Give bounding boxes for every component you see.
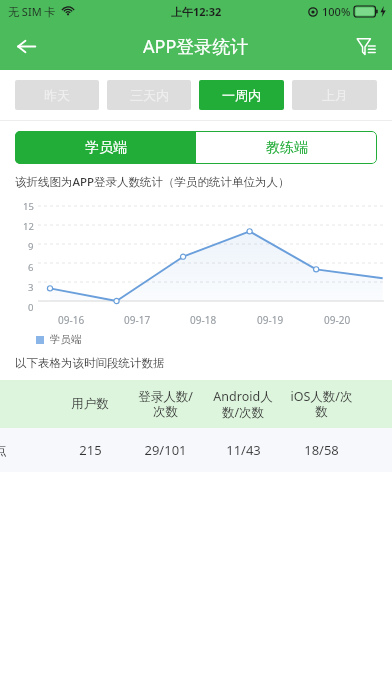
button[interactable]: 三天内 <box>107 80 191 110</box>
button[interactable]: 学员端 <box>15 131 196 164</box>
staticText: 点 <box>0 442 7 458</box>
button[interactable]: 一周内 <box>199 80 284 110</box>
staticText: 一周内 <box>222 87 261 103</box>
button[interactable]: Filter <box>346 26 386 66</box>
staticText: 用户数 <box>71 396 109 412</box>
staticText: 09-18 <box>190 313 217 327</box>
staticText: Android人 数/次数 <box>213 388 273 420</box>
staticText: 0 <box>28 301 34 313</box>
staticText: 100% <box>322 4 351 19</box>
staticText: 上午12:32 <box>171 4 222 19</box>
staticText: 15 <box>23 200 34 212</box>
staticText: 215 <box>79 441 102 459</box>
staticText: 该折线图为APP登录人数统计（学员的统计单位为人） <box>15 174 290 190</box>
staticText: 以下表格为该时间段统计数据 <box>15 356 165 370</box>
staticText: 09-16 <box>58 313 85 327</box>
staticText: 无 SIM 卡 <box>8 4 56 19</box>
staticText: 9 <box>28 240 34 252</box>
staticText: 09-17 <box>124 313 151 327</box>
staticText: 29/101 <box>144 441 187 459</box>
button[interactable]: 昨天 <box>15 80 99 110</box>
staticText: 09-19 <box>257 313 284 327</box>
button[interactable]: 教练端 <box>196 131 377 164</box>
staticText: 3 <box>28 281 34 293</box>
staticText: 学员端 <box>85 139 127 157</box>
staticText: 学员端 <box>50 333 82 346</box>
staticText: 上月 <box>322 87 348 103</box>
staticText: 18/58 <box>304 441 339 459</box>
staticText: 6 <box>28 261 34 273</box>
staticText: 11/43 <box>226 441 261 459</box>
button[interactable]: Back <box>6 26 46 66</box>
staticText: APP登录统计 <box>143 34 249 59</box>
staticText: 09-20 <box>324 313 351 327</box>
staticText: 教练端 <box>266 139 308 157</box>
staticText: iOS人数/次 数 <box>290 388 353 420</box>
staticText: 昨天 <box>44 87 70 103</box>
staticText: 12 <box>23 220 34 232</box>
staticText: 登录人数/ 次数 <box>138 388 193 420</box>
staticText: 三天内 <box>130 87 169 103</box>
